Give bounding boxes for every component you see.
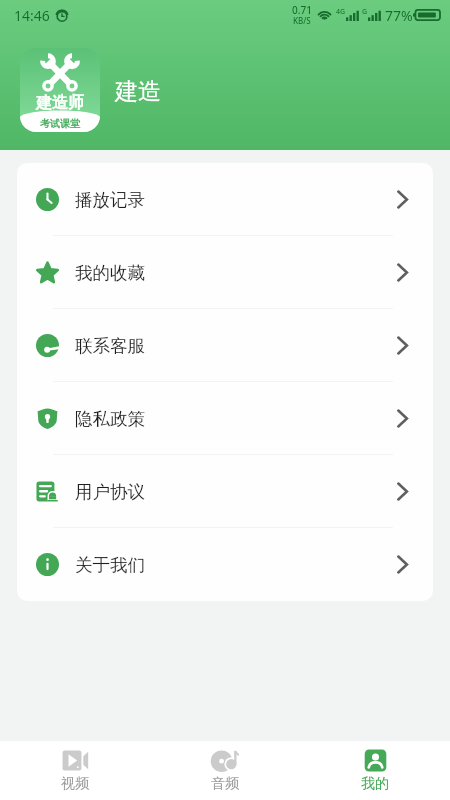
button[interactable]: 隐私政策 xyxy=(17,382,433,455)
staticText: 我的收藏 xyxy=(75,262,145,284)
staticText: KB/S xyxy=(293,15,311,26)
staticText: 建造师 xyxy=(36,93,84,113)
button[interactable]: 播放记录 xyxy=(17,163,433,236)
staticText: 用户协议 xyxy=(75,481,145,503)
staticText: 隐私政策 xyxy=(75,408,145,430)
button[interactable]: 视频 xyxy=(0,741,150,800)
staticText: 4G xyxy=(336,7,346,17)
button[interactable]: 我的收藏 xyxy=(17,236,433,309)
button[interactable]: 联系客服 xyxy=(17,309,433,382)
staticText: G xyxy=(362,7,368,17)
staticText: 联系客服 xyxy=(75,335,145,357)
staticText: 关于我们 xyxy=(75,554,145,576)
staticText: 播放记录 xyxy=(75,189,145,211)
staticText: 0.71 xyxy=(292,3,312,17)
staticText: 音频 xyxy=(211,775,239,793)
button[interactable]: 用户协议 xyxy=(17,455,433,528)
button[interactable]: 音频 xyxy=(150,741,300,800)
staticText: 14:46 xyxy=(14,6,50,25)
button[interactable]: 关于我们 xyxy=(17,528,433,601)
staticText: 建造 xyxy=(115,77,161,106)
staticText: 考试课堂 xyxy=(40,117,80,130)
button[interactable]: 我的 xyxy=(300,741,450,800)
staticText: 视频 xyxy=(61,775,89,793)
staticText: 我的 xyxy=(361,775,389,793)
staticText: 77% xyxy=(385,6,413,25)
